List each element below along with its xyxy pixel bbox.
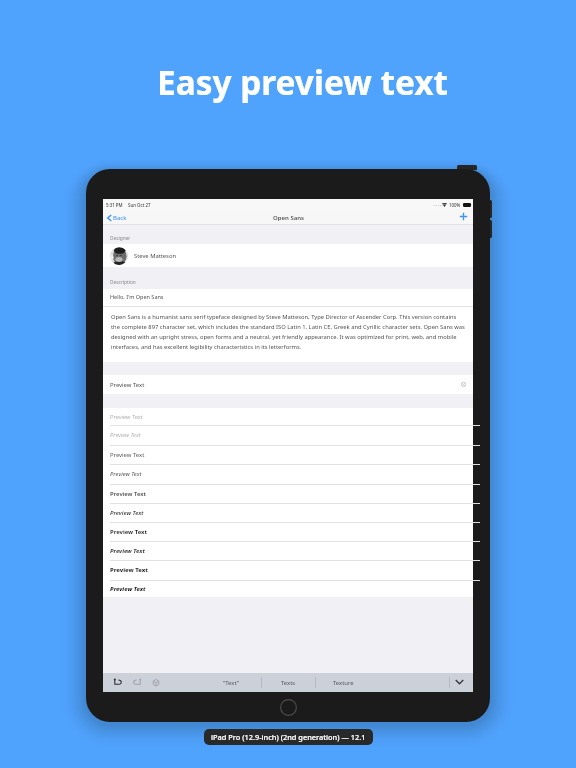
button[interactable]: Preview Text <box>103 425 473 444</box>
staticText: Preview Text <box>110 470 142 478</box>
button[interactable]: Preview Text <box>103 464 473 484</box>
button[interactable]: Back <box>107 214 127 222</box>
button[interactable]: Preview Text <box>103 408 473 425</box>
button[interactable]: Redo <box>132 678 142 687</box>
staticText: Description <box>110 279 136 286</box>
button[interactable]: Steve Matteson <box>103 244 473 267</box>
staticText: Texts <box>281 679 296 687</box>
button[interactable]: Collapse <box>455 678 464 686</box>
button[interactable]: Duplicate <box>151 678 161 687</box>
staticText: Sun Oct 27 <box>128 202 151 208</box>
button[interactable]: Preview Text <box>103 541 473 560</box>
button[interactable]: Preview Text <box>103 503 473 522</box>
button[interactable]: Preview Text <box>103 375 473 394</box>
staticText: Steve Matteson <box>134 252 176 260</box>
button[interactable]: Add <box>459 212 468 221</box>
button[interactable]: Undo <box>113 678 123 687</box>
staticText: Designer <box>110 235 131 242</box>
button[interactable]: Preview Text <box>103 580 473 597</box>
staticText: Preview Text <box>110 509 144 517</box>
staticText: Preview Text <box>110 451 145 459</box>
button[interactable]: “Text” <box>223 673 239 692</box>
staticText: Texture <box>333 679 354 687</box>
staticText: Back <box>113 214 127 222</box>
staticText: 5:31 PM <box>106 202 123 208</box>
staticText: Easy preview text <box>157 59 448 104</box>
staticText: Preview Text <box>110 585 146 593</box>
staticText: Open Sans is a humanist sans serif typef… <box>111 313 466 351</box>
button[interactable]: Preview Text <box>103 560 473 579</box>
staticText: Preview Text <box>110 547 145 555</box>
staticText: Preview Text <box>110 528 148 536</box>
staticText: Preview Text <box>110 431 141 439</box>
staticText: iPad Pro (12.9-inch) (2nd generation) — … <box>211 732 366 742</box>
button[interactable]: Texts <box>281 673 296 692</box>
button[interactable]: Preview Text <box>103 445 473 464</box>
staticText: Hello, I'm Open Sans <box>110 293 164 300</box>
staticText: Open Sans <box>273 214 304 222</box>
staticText: 100% <box>449 202 461 208</box>
button[interactable]: Preview Text <box>103 484 473 503</box>
staticText: “Text” <box>223 679 239 687</box>
staticText: Preview Text <box>110 566 148 574</box>
button[interactable]: Texture <box>333 673 354 692</box>
button[interactable]: Preview Text <box>103 522 473 541</box>
staticText: Preview Text <box>110 381 145 389</box>
staticText: Preview Text <box>110 413 143 421</box>
staticText: Preview Text <box>110 490 146 498</box>
